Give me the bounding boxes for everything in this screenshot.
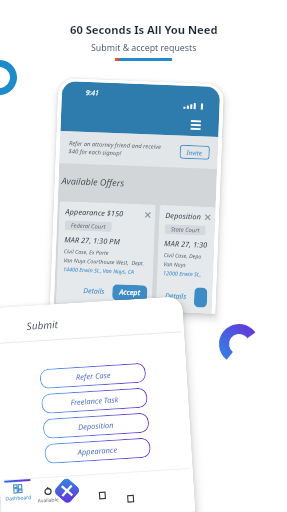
staticText: 12000 Erwin St., Van Nu (163, 269, 208, 278)
staticText: Details (83, 286, 105, 297)
button[interactable]: Invite (179, 145, 210, 160)
staticText: Invite (187, 148, 203, 156)
staticText: Details (165, 291, 187, 302)
staticText: Deposition (78, 420, 114, 432)
staticText: Federal Court (71, 221, 106, 231)
button[interactable]: New request (52, 476, 82, 506)
staticText: Accept (119, 287, 140, 298)
staticText: 60 Seconds Is All You Need (70, 22, 218, 37)
staticText: Civil Case, Depo (164, 251, 202, 260)
staticText: Submit (26, 317, 59, 333)
button[interactable]: Freelance Task (41, 387, 148, 414)
staticText: Van Nuys Courthouse West, Dept. 305 (63, 256, 149, 266)
staticText: 9:41 (86, 88, 99, 97)
button[interactable]: Accept (112, 284, 148, 301)
button[interactable]: Tab (87, 491, 118, 500)
button[interactable]: Available (33, 486, 64, 505)
button[interactable]: Deposition $250 (156, 205, 216, 314)
staticText: Refer Case (76, 370, 111, 382)
staticText: State Court (171, 225, 200, 234)
staticText: MAR 27, 1:30 PM (164, 238, 209, 250)
staticText: Dashboard (5, 494, 32, 503)
button[interactable]: Dashboard (3, 484, 34, 503)
button[interactable]: Appearance (44, 437, 151, 464)
staticText: Available (37, 496, 60, 505)
button[interactable]: Refer Case (39, 363, 146, 389)
staticText: Available Offers (61, 174, 125, 188)
staticText: MAR 27, 1:30 PM (64, 234, 120, 246)
button[interactable]: Accept (194, 287, 208, 308)
staticText: Civil Case, Ex Parte (64, 247, 109, 256)
button[interactable]: Appearance $150 (56, 201, 156, 308)
button[interactable]: Tab (115, 494, 146, 504)
staticText: Refer an attorney friend and receive $40… (68, 139, 169, 159)
staticText: Van Nuys Courthouse We (163, 260, 208, 269)
staticText: Appearance (77, 444, 118, 457)
button[interactable]: Deposition (42, 412, 149, 439)
staticText: Deposition $250 (165, 210, 205, 222)
button[interactable]: Details (80, 284, 108, 299)
staticText: Appearance $150 (65, 206, 145, 219)
staticText: 14400 Erwin St., Van Nuys, CA 91401 (63, 265, 148, 275)
staticText: Freelance Task (70, 394, 119, 407)
staticText: Submit & accept requests (91, 42, 197, 54)
button[interactable]: Details (162, 289, 190, 304)
